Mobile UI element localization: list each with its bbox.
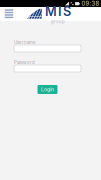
staticText: group (51, 19, 65, 24)
button[interactable]: Menu (0, 7, 16, 21)
staticText: S (63, 4, 71, 19)
staticText: Username (14, 40, 36, 45)
staticText: Password (14, 60, 35, 65)
staticText: Login (41, 86, 54, 92)
button[interactable]: Login (37, 85, 57, 94)
staticText: M (45, 4, 57, 19)
staticText: I (58, 4, 62, 19)
staticText: 09:38 (81, 0, 99, 7)
